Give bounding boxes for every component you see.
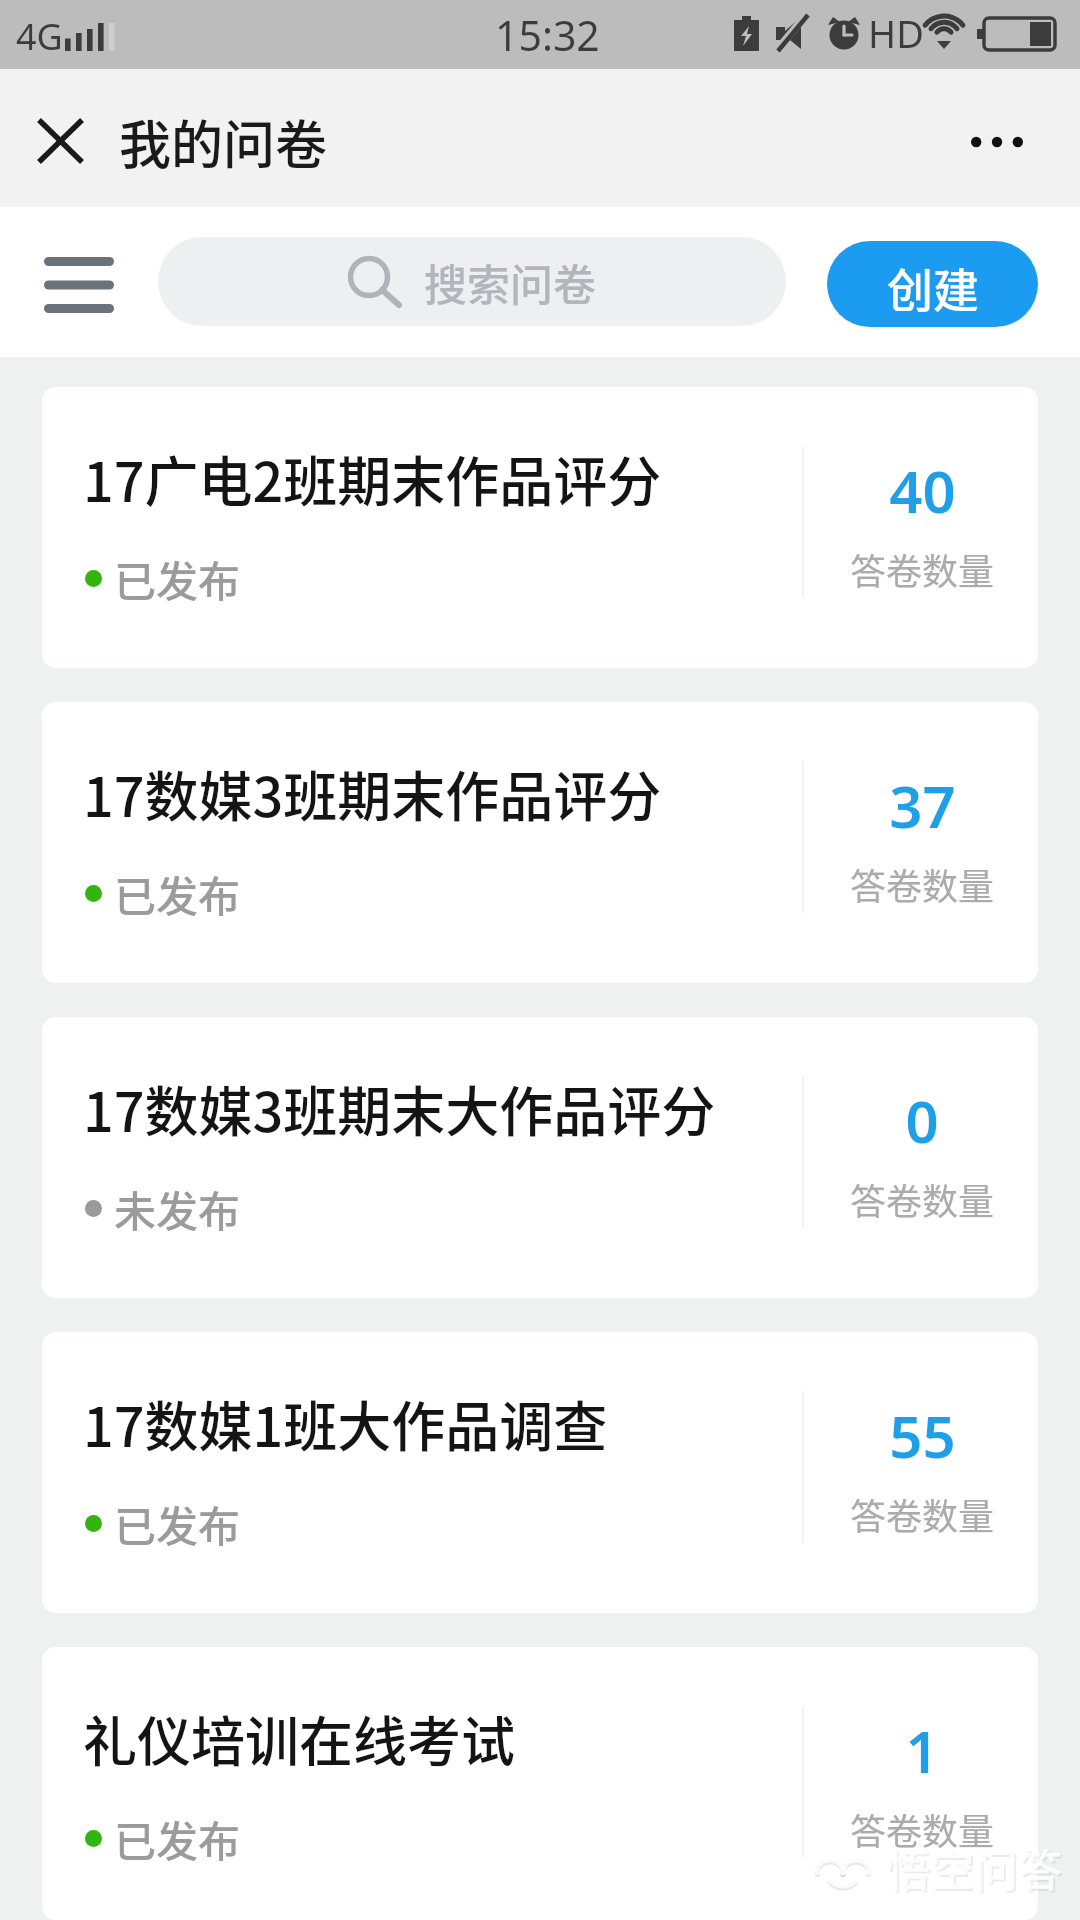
staticText: HD [868,7,924,59]
staticText: 创建 [887,254,979,321]
staticText: 4G [16,12,63,61]
staticText: 悟空问答 [886,1836,1062,1900]
staticText: 已发布 [114,548,241,609]
button[interactable]: 17广电2班期末作品评分 [42,387,1038,668]
staticText: 我的问卷 [119,104,328,179]
staticText: 55 [889,1396,956,1475]
button[interactable]: More options [950,91,1044,185]
button[interactable]: 搜索问卷 [158,237,786,326]
staticText: 搜索问卷 [424,251,596,313]
staticText: 悟空问答 [888,1838,1064,1902]
staticText: 0 [905,1081,939,1160]
staticText: 已发布 [114,863,241,924]
staticText: 17数媒3班期末大作品评分 [83,1069,716,1147]
button[interactable]: 17数媒3班期末大作品评分 [42,1017,1038,1298]
button[interactable]: 17数媒1班大作品调查 [42,1332,1038,1613]
button[interactable]: 礼仪培训在线考试 [42,1647,1038,1920]
staticText: 未发布 [114,1178,241,1239]
staticText: 17数媒1班大作品调查 [83,1384,608,1462]
staticText: 17数媒3班期末作品评分 [83,754,662,832]
button[interactable]: 创建 [827,241,1038,327]
staticText: 答卷数量 [850,858,995,910]
staticText: 答卷数量 [850,1488,995,1540]
staticText: 37 [889,766,956,845]
staticText: 15:32 [495,7,600,63]
staticText: 答卷数量 [850,1803,995,1855]
staticText: 17广电2班期末作品评分 [83,439,662,517]
button[interactable]: Menu [20,233,138,337]
staticText: 礼仪培训在线考试 [83,1699,515,1777]
button[interactable]: 17数媒3班期末作品评分 [42,702,1038,983]
staticText: 已发布 [114,1493,241,1554]
staticText: 40 [889,451,956,530]
button[interactable]: Close [12,90,108,186]
staticText: 1 [905,1711,939,1790]
staticText: 答卷数量 [850,1173,995,1225]
staticText: 已发布 [114,1808,241,1869]
staticText: 答卷数量 [850,543,995,595]
